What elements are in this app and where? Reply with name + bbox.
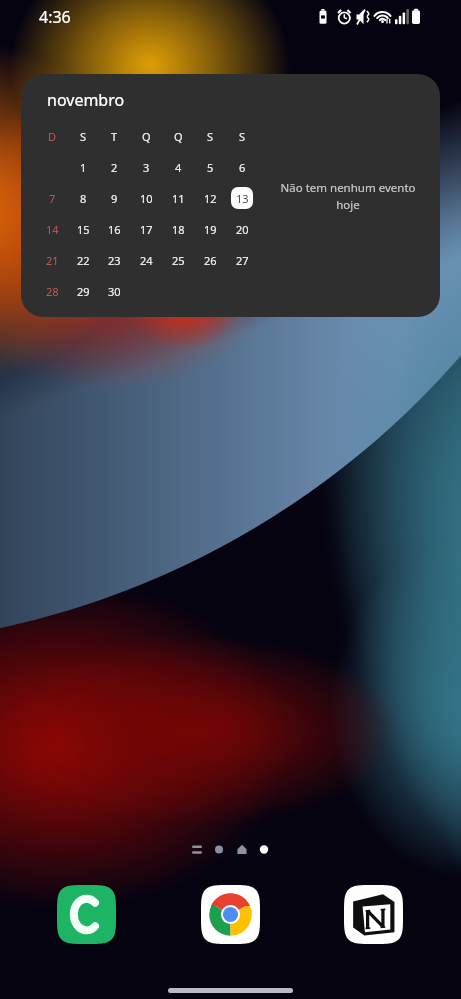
staticText: D [48,129,57,144]
staticText: 9 [111,191,118,206]
button[interactable]: novembro [21,74,440,317]
staticText: Não tem nenhum evento hoje [280,180,416,212]
button[interactable]: Phone [57,885,116,944]
staticText: 6 [239,160,246,175]
staticText: novembro [47,89,125,111]
button[interactable]: Notion [344,885,403,944]
staticText: 25 [172,253,185,268]
staticText: S [207,129,214,144]
staticText: S [80,129,87,144]
staticText: 3 [143,160,150,175]
staticText: 14 [46,222,59,237]
staticText: 19 [204,222,217,237]
staticText: 17 [140,222,153,237]
staticText: 21 [46,253,59,268]
staticText: 5 [207,160,214,175]
button[interactable]: Chrome [201,885,260,944]
staticText: T [111,129,118,144]
staticText: 24 [140,253,153,268]
staticText: Q [142,129,151,144]
staticText: 1 [80,160,87,175]
staticText: 13 [236,191,249,206]
staticText: 8 [80,191,87,206]
staticText: 12 [204,191,217,206]
staticText: 4:36 [39,6,71,28]
staticText: 22 [77,253,90,268]
staticText: 30 [108,284,121,299]
staticText: 29 [77,284,90,299]
staticText: 15 [77,222,90,237]
staticText: 11 [172,191,185,206]
staticText: 23 [108,253,121,268]
staticText: 28 [46,284,59,299]
staticText: 10 [140,191,153,206]
staticText: 7 [49,191,56,206]
staticText: 16 [108,222,121,237]
button[interactable]: Home screen pages [192,843,461,857]
staticText: S [239,129,246,144]
staticText: 20 [236,222,249,237]
staticText: Q [174,129,183,144]
staticText: 27 [236,253,249,268]
staticText: 4 [175,160,182,175]
staticText: 2 [111,160,118,175]
staticText: 18 [172,222,185,237]
button[interactable]: Home [168,988,293,993]
staticText: 26 [204,253,217,268]
